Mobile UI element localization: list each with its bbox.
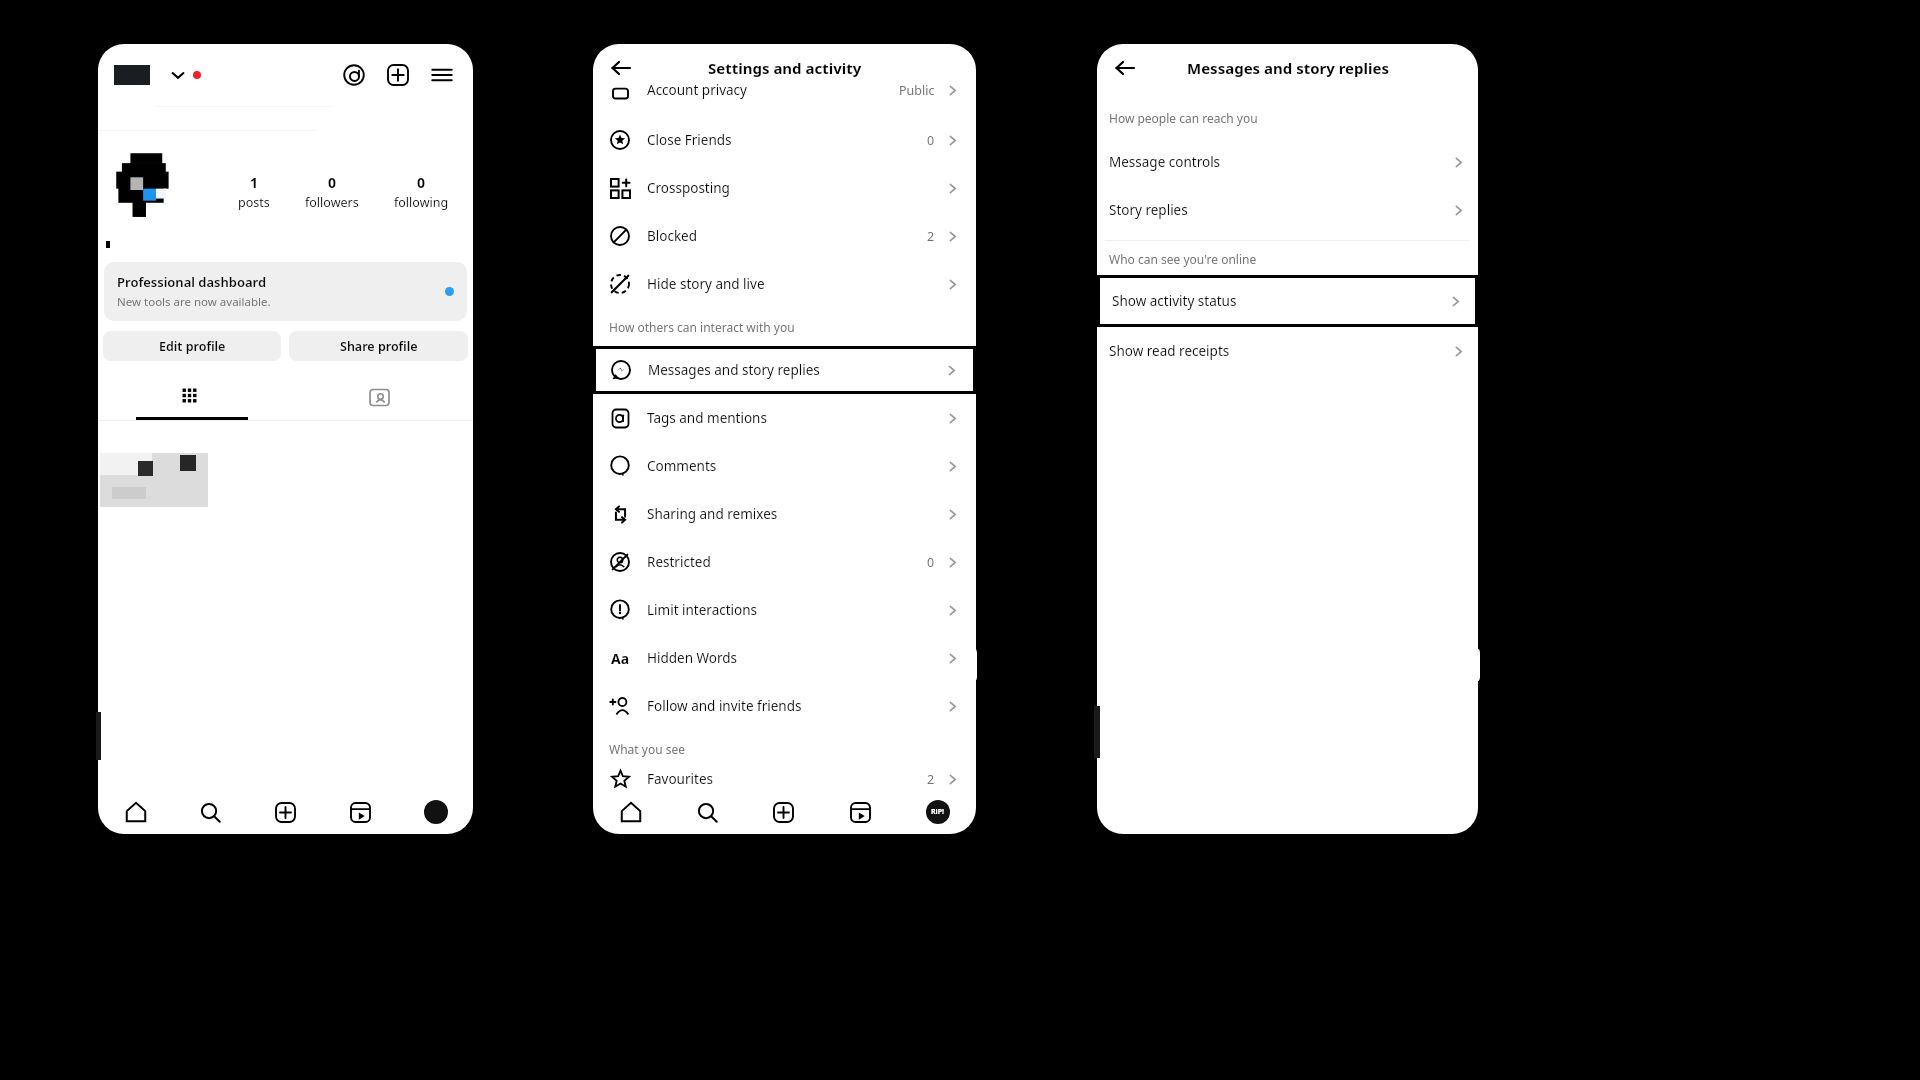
button[interactable]: Profile	[398, 790, 473, 834]
staticText: Account privacy	[647, 81, 747, 99]
staticText: 2	[927, 228, 935, 245]
button[interactable]: 0	[394, 173, 449, 211]
button[interactable]: Profile	[899, 790, 976, 834]
staticText: Show read receipts	[1109, 342, 1230, 360]
button[interactable]: Favourites	[609, 768, 960, 790]
staticText: Edit profile	[159, 338, 226, 355]
button[interactable]: Tags and mentions	[593, 394, 976, 442]
button[interactable]: Home	[98, 790, 173, 834]
staticText: 0	[328, 173, 337, 192]
button[interactable]: Messages and story replies	[596, 349, 973, 391]
button[interactable]: Threads	[337, 58, 371, 92]
staticText: Aa	[611, 649, 630, 668]
staticText: Messages and story replies	[1187, 58, 1389, 78]
staticText: Crossposting	[647, 179, 730, 197]
staticText: Hidden Words	[647, 649, 738, 667]
button[interactable]: Hide story and live	[593, 260, 976, 308]
staticText: Story replies	[1109, 201, 1188, 219]
button[interactable]: Story replies	[1097, 186, 1478, 234]
button[interactable]: Professional dashboard	[104, 262, 467, 321]
button[interactable]: Aa	[593, 634, 976, 682]
button[interactable]: Blocked	[593, 212, 976, 260]
button[interactable]: Search	[173, 790, 248, 834]
button[interactable]: 0	[305, 173, 359, 211]
button[interactable]: Share profile	[289, 331, 468, 361]
staticText: posts	[238, 194, 270, 211]
button[interactable]: New post	[381, 58, 415, 92]
staticText: 1	[250, 173, 259, 192]
staticText: following	[394, 194, 449, 211]
button[interactable]: Account privacy	[609, 79, 960, 101]
staticText: Messages and story replies	[648, 361, 820, 379]
staticText: Follow and invite friends	[647, 697, 802, 715]
button[interactable]: Follow and invite friends	[593, 682, 976, 730]
button[interactable]: Grid	[98, 377, 285, 417]
button[interactable]: Create	[745, 790, 822, 834]
button[interactable]: Message controls	[1097, 138, 1478, 186]
button[interactable]: Back	[1105, 48, 1145, 88]
staticText: Share profile	[340, 338, 418, 355]
staticText: Hide story and live	[647, 275, 765, 293]
staticText: Comments	[647, 457, 717, 475]
button[interactable]: Create	[248, 790, 323, 834]
staticText: Settings and activity	[708, 58, 862, 78]
staticText: Close Friends	[647, 131, 732, 149]
staticText: Limit interactions	[647, 601, 758, 619]
staticText: Who can see you're online	[1109, 251, 1257, 267]
staticText: What you see	[609, 741, 685, 757]
staticText: New tools are now available.	[117, 294, 271, 310]
button[interactable]: Restricted	[593, 538, 976, 586]
button[interactable]: Home	[593, 790, 669, 834]
button[interactable]: 1	[238, 173, 270, 211]
staticText: Restricted	[647, 553, 711, 571]
staticText: Favourites	[647, 770, 713, 788]
staticText: Tags and mentions	[647, 409, 767, 427]
button[interactable]: Search	[669, 790, 745, 834]
staticText: 0	[927, 132, 935, 149]
button[interactable]: Reels	[822, 790, 899, 834]
staticText: Message controls	[1109, 153, 1221, 171]
button[interactable]: Show read receipts	[1097, 327, 1478, 375]
staticText: 0	[417, 173, 426, 192]
button[interactable]: Tagged	[285, 377, 473, 417]
button[interactable]: Sharing and remixes	[593, 490, 976, 538]
button[interactable]: Menu	[425, 58, 459, 92]
button[interactable]: Back	[601, 48, 641, 88]
staticText: RiP!	[931, 807, 945, 817]
button[interactable]: Edit profile	[103, 331, 281, 361]
button[interactable]: Comments	[593, 442, 976, 490]
button[interactable]: Close Friends	[593, 116, 976, 164]
staticText: 2	[927, 771, 935, 788]
button[interactable]: Show activity status	[1100, 278, 1475, 324]
button[interactable]: Reels	[323, 790, 398, 834]
staticText: followers	[305, 194, 359, 211]
staticText: Show activity status	[1112, 292, 1237, 310]
staticText: How others can interact with you	[609, 319, 795, 335]
staticText: Sharing and remixes	[647, 505, 778, 523]
staticText: 0	[927, 554, 935, 571]
staticText: Public	[899, 82, 935, 99]
staticText: How people can reach you	[1109, 110, 1258, 126]
button[interactable]: Limit interactions	[593, 586, 976, 634]
staticText: Blocked	[647, 227, 698, 245]
button[interactable]: Crossposting	[593, 164, 976, 212]
staticText: Professional dashboard	[117, 273, 267, 291]
